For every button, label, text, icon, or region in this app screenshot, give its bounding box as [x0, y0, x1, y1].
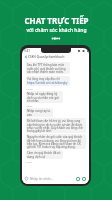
staticText: Nguyên nhân do gói cước của quý khách đã…	[27, 135, 85, 148]
staticText: CSKH Quanlychamkhach	[28, 55, 65, 59]
staticText: Sau khi TPT thông báo mức cước phí, quý …	[27, 63, 69, 73]
staticText: 10:31	[26, 160, 33, 163]
staticText: https://viettel.vn/cskh/dangky	[27, 81, 68, 85]
staticText: Cảm ơn quý khách đã sử dụng dịch vụ!	[27, 151, 62, 158]
staticText: với chăm sóc khách hàng	[26, 27, 87, 34]
staticText: 9:41	[24, 49, 30, 53]
button[interactable]: CSKH Quanlychamkhach	[22, 54, 89, 60]
staticText: Nhập cung tay tu van	[27, 109, 52, 116]
staticText: Nhập số ngày đăng ký dịch vụ và nhấn nút…	[27, 92, 62, 102]
button[interactable]: Add attachment	[25, 177, 28, 180]
staticText: 10:25	[26, 104, 33, 107]
button[interactable]: Send	[82, 177, 86, 181]
staticText: Nhập tin nhắn...	[30, 177, 54, 181]
button[interactable]: Emoji	[76, 177, 80, 181]
staticText: Vui lòng truy cập địa chỉ	[27, 77, 61, 81]
staticText: CHAT TRỰC TIẾP	[24, 15, 89, 26]
staticText: 10:24	[26, 87, 33, 90]
staticText: Để biết bạn cần hỗ trợ gì, vui lòng cung…	[27, 119, 85, 132]
